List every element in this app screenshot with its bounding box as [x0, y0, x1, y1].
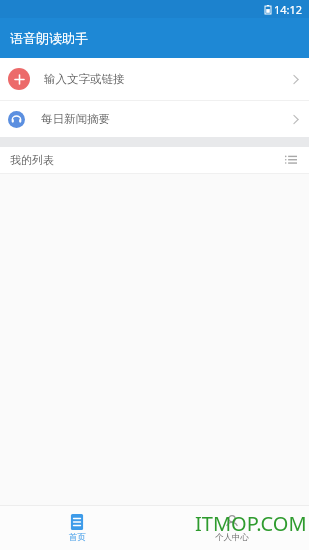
button[interactable]: List options [283, 152, 299, 168]
staticText: 我的列表 [10, 153, 54, 167]
button[interactable]: 我的列表 [0, 147, 309, 173]
staticText: 语音朗读助手 [10, 30, 88, 46]
button[interactable]: 个人中心 [154, 511, 309, 546]
button[interactable]: 首页 [0, 511, 154, 546]
button[interactable]: 输入文字或链接 [0, 58, 309, 100]
staticText: 每日新闻摘要 [41, 112, 110, 126]
staticText: 个人中心 [215, 532, 249, 543]
staticText: 首页 [69, 532, 86, 543]
button[interactable]: 每日新闻摘要 [0, 101, 309, 137]
staticText: ITMOP.COM [195, 510, 307, 537]
staticText: 输入文字或链接 [44, 72, 125, 86]
staticText: 14:12 [274, 2, 303, 17]
